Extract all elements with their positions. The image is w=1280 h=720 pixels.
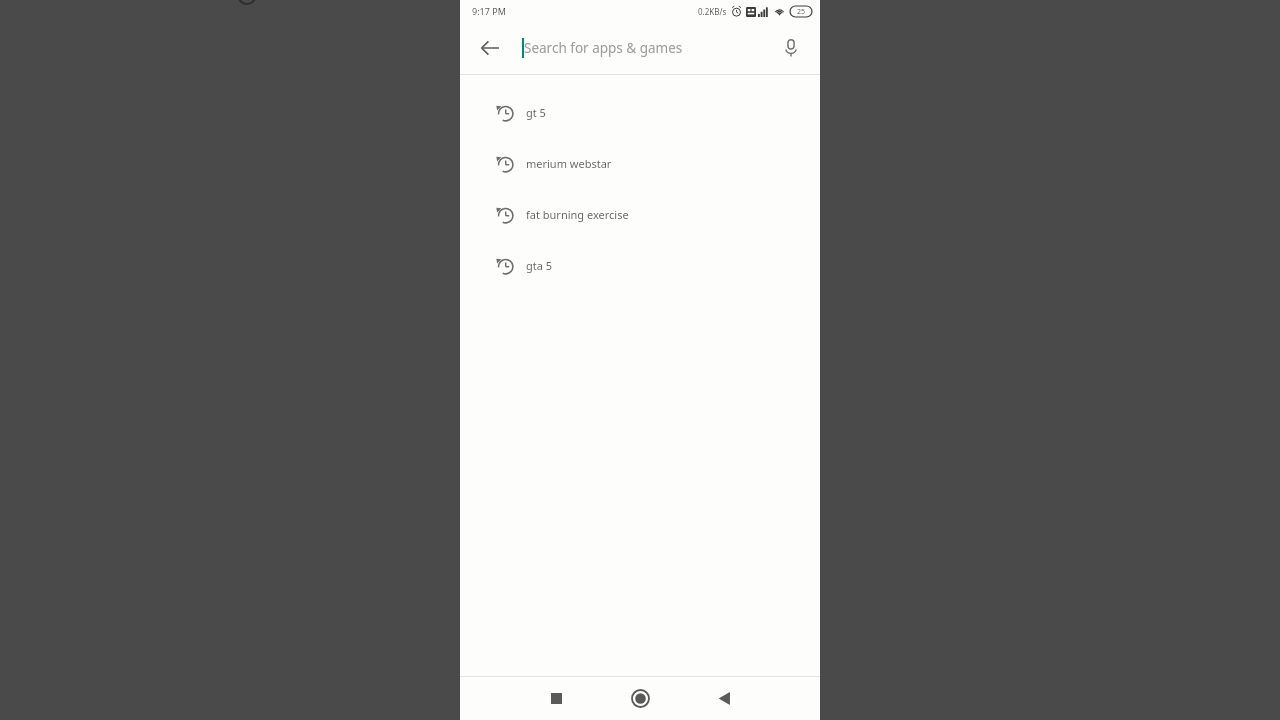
button[interactable]: Home — [618, 677, 662, 720]
staticText: 9:17 PM — [472, 5, 506, 17]
staticText: Search for apps & games — [524, 39, 683, 57]
button[interactable]: fat burning exercise — [460, 189, 820, 240]
button[interactable]: gta 5 — [460, 240, 820, 291]
staticText: fat burning exercise — [526, 207, 629, 222]
button[interactable]: Search for apps & games — [522, 28, 774, 68]
button[interactable]: Voice search — [774, 31, 808, 65]
button[interactable]: Recent apps — [534, 677, 578, 720]
staticText: gt 5 — [526, 105, 546, 120]
staticText: 0.2KB/s — [698, 6, 727, 17]
button[interactable]: Back — [702, 677, 746, 720]
staticText: 25 — [797, 7, 806, 17]
staticText: gta 5 — [526, 258, 553, 273]
button[interactable]: merium webstar — [460, 138, 820, 189]
button[interactable]: gt 5 — [460, 87, 820, 138]
button[interactable]: Back — [472, 30, 508, 66]
staticText: merium webstar — [526, 156, 612, 171]
